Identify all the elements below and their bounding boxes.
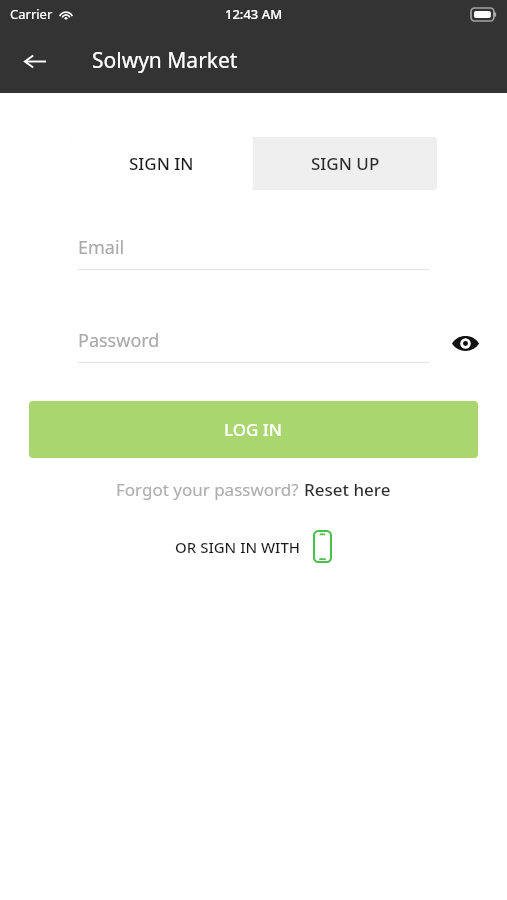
button[interactable]: Forgot your password? [0, 478, 507, 501]
staticText: OR SIGN IN WITH [175, 537, 301, 557]
staticText: Carrier [10, 5, 53, 23]
staticText: Forgot your password? [116, 478, 304, 501]
staticText: Password [78, 328, 160, 353]
button[interactable]: LOG IN [29, 401, 478, 458]
staticText: Solwyn Market [92, 46, 238, 75]
staticText: Reset here [304, 478, 391, 501]
button[interactable]: OR SIGN IN WITH [28, 518, 479, 575]
staticText: SIGN UP [311, 152, 380, 175]
staticText: Email [78, 235, 125, 260]
button[interactable]: SIGN UP [253, 137, 437, 190]
button[interactable]: Back [13, 39, 57, 83]
staticText: SIGN IN [129, 152, 194, 175]
button[interactable]: Show password [445, 323, 485, 363]
staticText: LOG IN [224, 418, 283, 441]
staticText: 12:43 AM [225, 5, 283, 23]
button[interactable]: SIGN IN [70, 137, 253, 190]
